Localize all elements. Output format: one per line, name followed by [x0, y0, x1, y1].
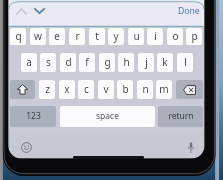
button[interactable]: g [99, 53, 115, 72]
button[interactable] [10, 80, 35, 99]
staticText: s [46, 55, 51, 69]
staticText: l [184, 55, 187, 69]
staticText: i [154, 29, 157, 43]
staticText: v [103, 82, 109, 96]
staticText: b [122, 82, 129, 96]
button[interactable]: j [138, 53, 154, 72]
staticText: r [75, 29, 80, 43]
button[interactable]: y [108, 28, 124, 45]
button[interactable]: Next field [34, 8, 45, 14]
button[interactable]: o [167, 28, 183, 45]
staticText: d [65, 55, 72, 69]
button[interactable]: m [156, 80, 172, 99]
button[interactable]: u [128, 28, 144, 45]
button[interactable]: k [157, 53, 173, 72]
staticText: n [142, 82, 149, 96]
button[interactable]: a [21, 53, 37, 72]
button[interactable]: p [186, 28, 202, 45]
staticText: Done [178, 5, 200, 17]
button[interactable]: q [10, 28, 26, 45]
staticText: p [191, 29, 198, 43]
staticText: w [34, 29, 42, 43]
staticText: c [84, 82, 89, 96]
button[interactable]: b [117, 80, 133, 99]
button[interactable]: r [69, 28, 85, 45]
staticText: x [64, 82, 70, 96]
staticText: f [85, 55, 89, 69]
button[interactable]: c [78, 80, 94, 99]
button[interactable]: return [158, 106, 203, 127]
staticText: space [96, 110, 119, 122]
button[interactable]: Emoji [21, 142, 32, 153]
button[interactable]: x [59, 80, 75, 99]
staticText: m [159, 82, 169, 96]
button[interactable]: n [137, 80, 153, 99]
button[interactable]: Previous field [16, 8, 27, 15]
button[interactable]: space [60, 106, 155, 127]
button[interactable]: l [177, 53, 193, 72]
button[interactable]: v [98, 80, 114, 99]
staticText: h [123, 55, 130, 69]
button[interactable]: w [30, 28, 46, 45]
staticText: o [172, 29, 179, 43]
button[interactable]: s [40, 53, 56, 72]
button[interactable]: i [147, 28, 163, 45]
staticText: k [162, 55, 168, 69]
staticText: t [95, 29, 99, 43]
button[interactable]: f [79, 53, 95, 72]
button[interactable]: t [89, 28, 105, 45]
staticText: y [113, 29, 119, 43]
button[interactable]: z [39, 80, 55, 99]
staticText: 123 [26, 110, 41, 122]
button[interactable]: h [118, 53, 134, 72]
button[interactable]: 123 [10, 106, 56, 127]
staticText: q [15, 29, 22, 43]
staticText: z [45, 82, 50, 96]
staticText: return [168, 110, 194, 122]
staticText: u [133, 29, 140, 43]
staticText: e [54, 29, 60, 43]
staticText: g [104, 55, 111, 69]
button[interactable]: Dictation [187, 142, 195, 153]
staticText: a [26, 55, 32, 69]
button[interactable] [176, 80, 203, 99]
button[interactable]: Done [175, 3, 203, 20]
staticText: j [145, 55, 148, 69]
button[interactable]: e [49, 28, 65, 45]
button[interactable]: d [60, 53, 76, 72]
